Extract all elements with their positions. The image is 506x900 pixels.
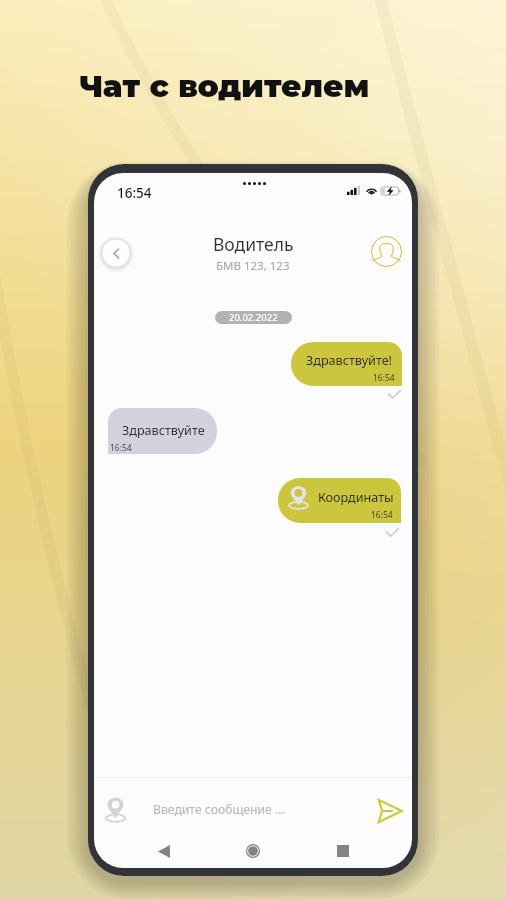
button[interactable]: Координаты <box>278 478 401 523</box>
button[interactable]: Back <box>151 838 177 864</box>
button[interactable]: Здравствуйте <box>108 408 217 454</box>
staticText: Здравствуйте! <box>306 352 393 369</box>
staticText: Координаты <box>318 489 394 506</box>
button[interactable]: Home <box>240 838 266 864</box>
button[interactable]: Attach location <box>100 793 130 823</box>
staticText: 20.02.2022 <box>229 311 278 324</box>
button[interactable]: Здравствуйте! <box>291 342 402 386</box>
button[interactable]: Profile <box>371 236 402 267</box>
staticText: 16:54 <box>371 509 393 521</box>
staticText: Чат с водителем <box>80 67 370 105</box>
staticText: Водитель <box>213 232 294 256</box>
staticText: 16:54 <box>117 184 152 202</box>
button[interactable]: Back <box>99 236 133 270</box>
button[interactable]: Recents <box>330 838 356 864</box>
staticText: Здравствуйте <box>122 422 205 439</box>
staticText: Введите сообщение ... <box>153 801 285 818</box>
staticText: БМВ 123, 123 <box>216 258 290 274</box>
button[interactable]: Send <box>372 794 406 828</box>
staticText: 16:54 <box>373 372 395 384</box>
staticText: 16:54 <box>110 442 132 454</box>
